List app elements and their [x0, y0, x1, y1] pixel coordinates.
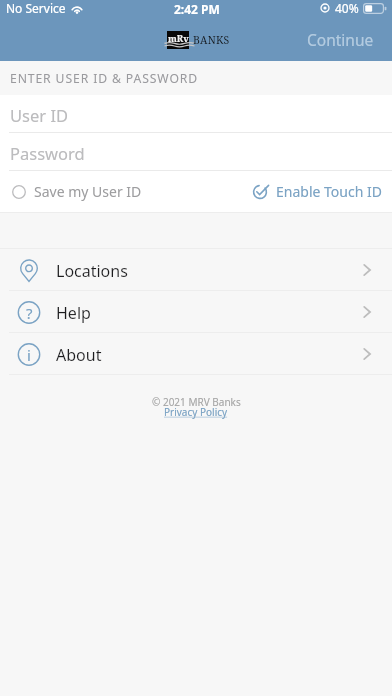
- staticText: Save my User ID: [34, 182, 142, 201]
- staticText: ENTER USER ID & PASSWORD: [10, 70, 199, 87]
- button[interactable]: ?: [0, 291, 392, 332]
- button[interactable]: Password: [0, 133, 392, 170]
- staticText: Enable Touch ID: [276, 182, 382, 201]
- staticText: User ID: [10, 104, 69, 126]
- staticText: Password: [10, 142, 85, 164]
- staticText: mRv: [168, 32, 189, 44]
- staticText: i: [27, 345, 31, 365]
- staticText: 40%: [335, 0, 359, 16]
- staticText: BANKS: [193, 33, 230, 47]
- staticText: Continue: [307, 29, 374, 50]
- button[interactable]: i: [0, 333, 392, 374]
- button[interactable]: Privacy Policy: [164, 405, 228, 419]
- button[interactable]: User ID: [0, 95, 392, 132]
- staticText: Locations: [56, 260, 128, 282]
- button[interactable]: Save my User ID: [0, 171, 142, 212]
- staticText: About: [56, 344, 102, 366]
- button[interactable]: Enable Touch ID: [252, 171, 392, 212]
- staticText: 2:42 PM: [174, 1, 220, 17]
- button[interactable]: Continue: [290, 23, 392, 59]
- staticText: Help: [56, 302, 91, 324]
- button[interactable]: Locations: [0, 249, 392, 290]
- staticText: ?: [26, 303, 33, 323]
- staticText: © 2021 MRV Banks: [152, 395, 241, 409]
- button[interactable]: MRV Banks: [167, 31, 230, 49]
- staticText: No Service: [6, 0, 66, 16]
